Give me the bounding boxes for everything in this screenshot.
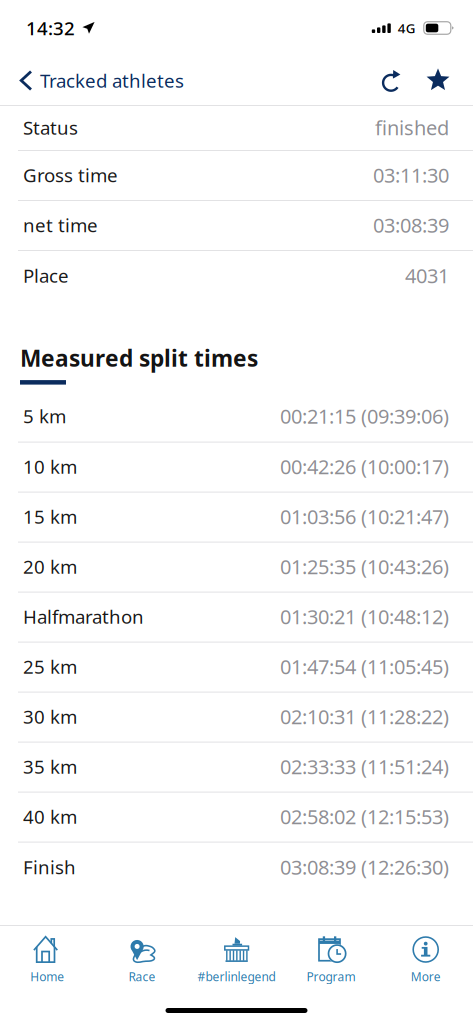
staticText: 25 km	[23, 654, 77, 679]
staticText: Race	[128, 968, 155, 984]
staticText: 30 km	[23, 704, 77, 729]
staticText: 10 km	[23, 454, 77, 479]
staticText: #berlinlegend	[197, 968, 275, 984]
button[interactable]: Program	[284, 926, 378, 984]
button[interactable]: Favourite	[414, 58, 462, 102]
staticText: 35 km	[23, 754, 77, 779]
button[interactable]: 5 km	[0, 392, 473, 442]
staticText: Halfmarathon	[23, 604, 144, 629]
button[interactable]: Finish	[0, 843, 473, 893]
button[interactable]: Refresh	[369, 59, 414, 102]
button[interactable]: 10 km	[0, 443, 473, 492]
staticText: finished	[375, 114, 449, 141]
staticText: 01:47:54 (11:05:45)	[280, 653, 449, 680]
staticText: Status	[23, 115, 78, 140]
button[interactable]: Place	[0, 251, 473, 301]
button[interactable]: Tracked athletes	[0, 58, 194, 102]
staticText: 01:30:21 (10:48:12)	[280, 603, 449, 630]
button[interactable]: 25 km	[0, 643, 473, 692]
button[interactable]: 30 km	[0, 693, 473, 742]
button[interactable]: net time	[0, 201, 473, 250]
button[interactable]: Race	[95, 926, 189, 984]
staticText: More	[411, 968, 441, 984]
staticText: 4031	[405, 262, 449, 289]
button[interactable]: Gross time	[0, 151, 473, 200]
staticText: Place	[23, 263, 69, 288]
staticText: 01:03:56 (10:21:47)	[280, 503, 449, 530]
button[interactable]: 40 km	[0, 793, 473, 842]
button[interactable]: Home	[0, 926, 95, 984]
button[interactable]: More	[378, 926, 473, 984]
staticText: 4G	[398, 19, 416, 37]
staticText: Tracked athletes	[40, 68, 184, 93]
staticText: 03:11:30	[373, 162, 449, 188]
button[interactable]: Status	[0, 106, 473, 150]
staticText: 20 km	[23, 554, 77, 579]
button[interactable]: #berlinlegend	[189, 926, 284, 984]
staticText: Finish	[23, 855, 76, 879]
staticText: Measured split times	[20, 343, 258, 373]
staticText: 00:42:26 (10:00:17)	[280, 453, 449, 480]
staticText: Home	[30, 968, 64, 984]
staticText: 02:58:02 (12:15:53)	[280, 803, 449, 830]
staticText: 03:08:39	[373, 212, 449, 238]
button[interactable]: 15 km	[0, 493, 473, 542]
staticText: 5 km	[23, 404, 66, 428]
staticText: 14:32	[26, 16, 75, 40]
staticText: 02:10:31 (11:28:22)	[280, 703, 449, 730]
staticText: 01:25:35 (10:43:26)	[280, 553, 449, 580]
button[interactable]: 35 km	[0, 743, 473, 792]
staticText: Gross time	[23, 163, 118, 187]
staticText: Program	[307, 968, 356, 984]
staticText: 00:21:15 (09:39:06)	[280, 403, 449, 429]
button[interactable]: 20 km	[0, 543, 473, 592]
staticText: 40 km	[23, 804, 77, 829]
staticText: 02:33:33 (11:51:24)	[280, 753, 449, 780]
staticText: net time	[23, 213, 98, 237]
button[interactable]: Halfmarathon	[0, 593, 473, 642]
staticText: 03:08:39 (12:26:30)	[280, 854, 449, 880]
staticText: 15 km	[23, 504, 77, 529]
